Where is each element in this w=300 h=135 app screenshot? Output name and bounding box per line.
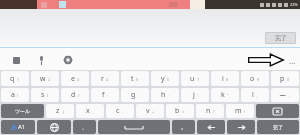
- button[interactable]: m: [226, 104, 254, 118]
- button[interactable]: i: [211, 71, 239, 86]
- staticText: 。: [181, 123, 187, 131]
- staticText: :: [107, 93, 109, 98]
- staticText: m: [235, 106, 242, 116]
- staticText: あ: [11, 123, 18, 131]
- button[interactable]: f: [91, 88, 119, 102]
- button[interactable]: あ: [1, 120, 35, 134]
- staticText: 2: [48, 77, 51, 82]
- staticText: i: [222, 74, 224, 84]
- staticText: s: [41, 90, 45, 100]
- staticText: 0: [287, 77, 290, 82]
- button[interactable]: Voice input: [34, 53, 48, 67]
- staticText: …: [289, 55, 296, 65]
- staticText: r: [101, 74, 104, 84]
- button[interactable]: ツール: [1, 104, 44, 118]
- staticText: 1: [17, 77, 20, 82]
- staticText: ): [47, 93, 49, 98]
- staticText: v: [146, 106, 150, 116]
- button[interactable]: 、: [73, 120, 96, 134]
- staticText: ?: [213, 109, 215, 114]
- staticText: -: [122, 109, 124, 114]
- button[interactable]: [227, 120, 255, 134]
- button[interactable]: Stickers: [9, 53, 23, 67]
- staticText: _: [92, 109, 94, 114]
- staticText: g: [131, 90, 136, 100]
- button[interactable]: x: [76, 104, 104, 118]
- staticText: |: [62, 109, 65, 114]
- button[interactable]: k: [211, 88, 239, 102]
- button[interactable]: Settings: [61, 53, 75, 67]
- staticText: x: [86, 106, 90, 116]
- button[interactable]: n: [196, 104, 224, 118]
- button[interactable]: [197, 120, 225, 134]
- button[interactable]: w: [31, 71, 59, 86]
- staticText: 8: [226, 77, 229, 82]
- staticText: u: [190, 74, 195, 84]
- staticText: c: [116, 106, 120, 116]
- button[interactable]: [37, 120, 71, 134]
- staticText: ": [227, 93, 229, 98]
- button[interactable]: 完了: [257, 120, 299, 134]
- button[interactable]: q: [1, 71, 29, 86]
- button[interactable]: v: [136, 104, 164, 118]
- button[interactable]: c: [106, 104, 134, 118]
- button[interactable]: b: [166, 104, 194, 118]
- button[interactable]: l: [241, 88, 269, 102]
- staticText: f: [102, 90, 105, 100]
- button[interactable]: [98, 120, 170, 134]
- staticText: k: [221, 90, 225, 100]
- button[interactable]: ー: [271, 88, 299, 102]
- staticText: a: [11, 90, 15, 100]
- staticText: ': [197, 93, 198, 98]
- staticText: 9: [257, 77, 260, 82]
- button[interactable]: [256, 104, 299, 118]
- staticText: 22%: [290, 2, 298, 7]
- button[interactable]: g: [121, 88, 149, 102]
- button[interactable]: u: [181, 71, 209, 86]
- staticText: !: [244, 109, 246, 114]
- button[interactable]: r: [91, 71, 119, 86]
- button[interactable]: h: [151, 88, 179, 102]
- staticText: h: [161, 90, 166, 100]
- staticText: l: [252, 90, 254, 100]
- staticText: /: [78, 93, 80, 98]
- staticText: 5: [136, 77, 139, 82]
- staticText: ツール: [15, 108, 31, 114]
- button[interactable]: p: [271, 71, 299, 86]
- staticText: 3: [77, 77, 80, 82]
- staticText: +: [152, 109, 155, 114]
- staticText: p: [280, 74, 285, 84]
- staticText: j: [193, 90, 195, 100]
- button[interactable]: 。: [172, 120, 195, 134]
- staticText: d: [71, 90, 76, 100]
- button[interactable]: j: [181, 88, 209, 102]
- button[interactable]: 完了: [265, 32, 296, 44]
- staticText: n: [206, 106, 211, 116]
- staticText: 7: [197, 77, 200, 82]
- button[interactable]: z: [46, 104, 74, 118]
- staticText: t: [131, 74, 134, 84]
- staticText: o: [250, 74, 255, 84]
- button[interactable]: e: [61, 71, 89, 86]
- staticText: w: [40, 74, 46, 84]
- staticText: ·: [168, 93, 170, 98]
- button[interactable]: d: [61, 88, 89, 102]
- staticText: =: [182, 109, 185, 114]
- staticText: 完了: [275, 34, 287, 42]
- button[interactable]: o: [241, 71, 269, 86]
- button[interactable]: a: [1, 88, 29, 102]
- staticText: ;: [138, 93, 140, 98]
- staticText: ,: [256, 93, 258, 98]
- staticText: 、: [82, 123, 88, 131]
- staticText: ー: [279, 91, 286, 100]
- button[interactable]: t: [121, 71, 149, 86]
- button[interactable]: y: [151, 71, 179, 86]
- button[interactable]: More options: [287, 55, 297, 65]
- staticText: e: [71, 74, 75, 84]
- staticText: 6: [167, 77, 170, 82]
- button[interactable]: s: [31, 88, 59, 102]
- staticText: y: [161, 74, 165, 84]
- staticText: 完了: [273, 124, 283, 130]
- staticText: z: [56, 106, 60, 116]
- staticText: A1: [18, 123, 26, 131]
